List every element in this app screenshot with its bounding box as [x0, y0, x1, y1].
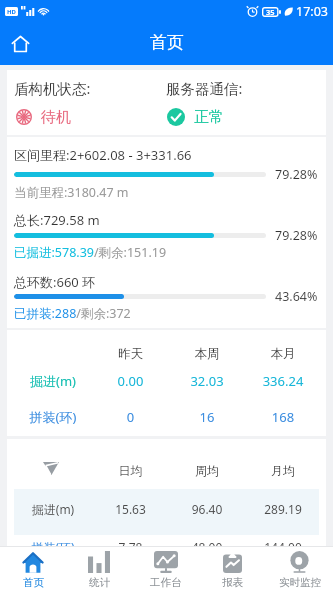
- staticText: 掘进(m): [14, 372, 92, 390]
- staticText: 拼装(环): [14, 408, 92, 426]
- staticText: 144.00: [245, 539, 321, 555]
- staticText: 7.78: [92, 539, 169, 555]
- staticText: 实时监控: [279, 576, 321, 589]
- staticText: 拼装(环): [14, 539, 92, 555]
- staticText: 336.24: [245, 372, 321, 390]
- staticText: 周均: [169, 463, 245, 478]
- staticText: 已掘进:578.39/剩余:151.19: [14, 244, 167, 261]
- staticText: 79.28%: [275, 166, 318, 182]
- staticText: 本周: [169, 346, 245, 362]
- staticText: 昨天: [92, 346, 169, 362]
- staticText: 服务器通信:: [166, 78, 243, 98]
- button[interactable]: 工作台: [132, 547, 199, 592]
- staticText: HD: [7, 8, 16, 16]
- staticText: 0.00: [92, 372, 169, 390]
- staticText: 首页: [150, 32, 184, 53]
- staticText: 15.63: [92, 501, 169, 517]
- staticText: 待机: [41, 108, 71, 127]
- staticText: 48.00: [169, 539, 245, 555]
- staticText: 正常: [194, 108, 224, 127]
- staticText: 日均: [92, 463, 169, 478]
- staticText: 79.28%: [275, 227, 318, 243]
- staticText: 16: [169, 408, 245, 426]
- staticText: 月均: [245, 463, 321, 478]
- staticText: 32.03: [169, 372, 245, 390]
- staticText: 35: [266, 7, 275, 17]
- button[interactable]: 报表: [199, 547, 266, 592]
- staticText: 盾构机状态:: [14, 78, 91, 98]
- staticText: 本月: [245, 346, 321, 362]
- staticText: 报表: [222, 576, 243, 589]
- staticText: 当前里程:3180.47 m: [14, 184, 129, 201]
- staticText: 17:03: [296, 3, 328, 20]
- staticText: 43.64%: [275, 288, 318, 304]
- staticText: 96.40: [169, 501, 245, 517]
- staticText: 首页: [23, 576, 44, 589]
- staticText: 总长:729.58 m: [14, 211, 100, 229]
- button[interactable]: Home: [6, 30, 34, 58]
- staticText: 掘进(m): [14, 501, 92, 517]
- staticText: 289.19: [245, 501, 321, 517]
- staticText: 0: [92, 408, 169, 426]
- staticText: 统计: [89, 576, 110, 589]
- button[interactable]: 实时监控: [266, 547, 333, 592]
- staticText: 工作台: [150, 576, 182, 589]
- button[interactable]: 统计: [66, 547, 132, 592]
- staticText: 总环数:660 环: [14, 273, 96, 291]
- staticText: [14, 462, 92, 478]
- staticText: 已拼装:288/剩余:372: [14, 305, 131, 322]
- staticText: 区间里程:2+602.08 - 3+331.66: [14, 146, 192, 164]
- button[interactable]: 首页: [0, 547, 66, 592]
- staticText: 168: [245, 408, 321, 426]
